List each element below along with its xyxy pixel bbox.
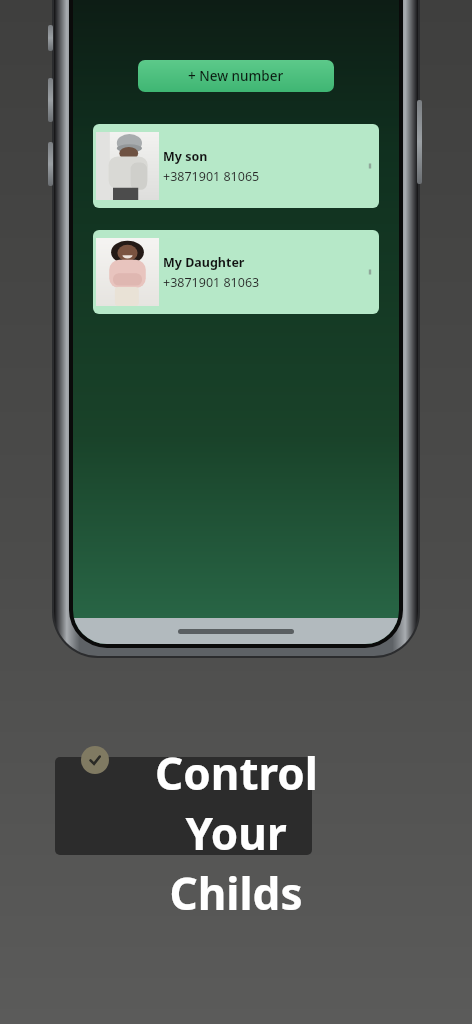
staticText: Your: [185, 803, 287, 863]
staticText: + New number: [188, 67, 284, 85]
staticText: My Daughter: [163, 254, 245, 271]
button[interactable]: + New number: [138, 60, 334, 92]
other: Verified: [81, 746, 109, 774]
button[interactable]: My Daughter: [93, 230, 379, 314]
staticText: Childs: [169, 863, 303, 923]
staticText: My son: [163, 148, 208, 165]
staticText: +3871901 81065: [163, 168, 260, 185]
staticText: +3871901 81063: [163, 274, 260, 291]
button[interactable]: My son: [93, 124, 379, 208]
staticText: Control: [155, 743, 318, 803]
